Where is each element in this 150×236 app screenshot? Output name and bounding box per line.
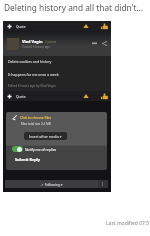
staticText: Submit Reply (15, 157, 40, 162)
staticText: ⋮ (101, 182, 105, 186)
staticText: It happens for me once a week (8, 72, 59, 77)
button[interactable]: Like (99, 91, 109, 101)
button[interactable]: Like (99, 21, 109, 31)
button[interactable]: Report (81, 21, 91, 31)
button[interactable]: Click to choose files (12, 115, 52, 120)
staticText: Vlad Vagin (22, 39, 43, 44)
button[interactable]: ✓ Following ▾ (5, 180, 98, 188)
button[interactable]: Submit Reply (15, 157, 40, 162)
staticText: Quote (16, 94, 26, 98)
button[interactable]: Reply (90, 39, 99, 48)
staticText: Insert other media ▾ (29, 134, 62, 139)
button[interactable]: Report (81, 91, 91, 101)
staticText: Click to choose files (20, 115, 52, 120)
staticText: Deleting history and all that didn't… (4, 2, 144, 13)
staticText: Max total size 2.4 MB (21, 122, 51, 126)
staticText: Edited 6 hours ago by Vlad Vagin (8, 84, 56, 88)
staticText: Last modified 07:51 (106, 220, 150, 227)
button[interactable]: Quote (3, 21, 31, 31)
button[interactable]: Quote (3, 91, 31, 101)
button[interactable]: More options (98, 180, 108, 188)
button[interactable]: Notify me of replies (12, 145, 57, 153)
staticText: ✓ Following ▾ (41, 182, 63, 187)
staticText: Delete cookies and history (8, 59, 52, 64)
staticText: 2 points (45, 40, 57, 44)
button[interactable]: Share (100, 39, 109, 48)
staticText: Notify me of replies (25, 147, 57, 152)
staticText: Posted 6 hours ago (22, 45, 51, 49)
staticText: Quote (16, 24, 26, 28)
button[interactable]: Insert other media ▾ (24, 132, 67, 140)
